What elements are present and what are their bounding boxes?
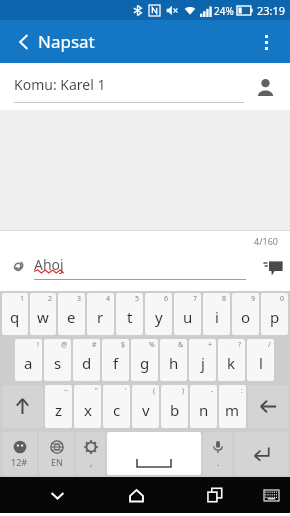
button[interactable]: Add contact (248, 70, 282, 104)
button[interactable]: $ (102, 339, 129, 381)
staticText: j (201, 353, 205, 373)
staticText: 0 (280, 294, 285, 304)
staticText: q (10, 307, 20, 327)
staticText: 6 (164, 294, 169, 304)
button[interactable]: 6 (145, 293, 172, 335)
button[interactable]: @ (44, 339, 71, 381)
staticText: , (90, 456, 93, 468)
staticText: Ahoj (34, 255, 64, 274)
staticText: EN (51, 456, 63, 468)
button[interactable]: Komu: Karel 1 (0, 63, 290, 110)
button[interactable]: 9 (232, 293, 259, 335)
button[interactable]: # (73, 339, 100, 381)
staticText: + (208, 340, 213, 350)
staticText: ? (238, 340, 242, 350)
staticText: Komu: Karel 1 (14, 75, 106, 94)
button[interactable]: ' (103, 385, 130, 428)
button[interactable]: " (74, 385, 101, 428)
staticText: v (142, 400, 150, 420)
staticText: a (24, 353, 33, 373)
staticText: f (113, 353, 119, 373)
button[interactable]: Switch keyboard (256, 480, 286, 510)
button[interactable]: ~ (45, 385, 72, 428)
button[interactable]: 2 (30, 293, 56, 335)
button[interactable]: 1 (2, 293, 28, 335)
staticText: i (215, 307, 219, 327)
staticText: ~ (64, 386, 69, 396)
button[interactable]: Language (39, 432, 74, 475)
staticText: t (127, 307, 133, 327)
button[interactable]: Home (114, 477, 158, 513)
button[interactable]: Hide keyboard (35, 477, 79, 513)
staticText: ) (182, 386, 185, 396)
staticText: 4 (106, 294, 111, 304)
button[interactable]: ? (218, 339, 245, 381)
staticText: Napsat (38, 30, 95, 53)
staticText: d (82, 353, 92, 373)
staticText: 9 (251, 294, 256, 304)
staticText: e (67, 307, 76, 327)
button[interactable]: 8 (203, 293, 230, 335)
staticText: . (217, 456, 220, 468)
button[interactable]: Back (8, 26, 40, 58)
staticText: u (183, 307, 193, 327)
staticText: w (37, 307, 49, 327)
button[interactable]: 5 (116, 293, 143, 335)
staticText: 3 (77, 294, 82, 304)
staticText: 5 (135, 294, 140, 304)
button[interactable]: 0 (261, 293, 288, 335)
staticText: y (155, 307, 163, 327)
staticText: $ (121, 340, 126, 350)
staticText: ! (37, 340, 39, 350)
staticText: k (227, 353, 236, 373)
staticText: c (113, 400, 121, 420)
staticText: 12# (11, 456, 28, 468)
button[interactable]: % (131, 339, 158, 381)
button[interactable]: 3 (58, 293, 85, 335)
staticText: 2 (48, 294, 53, 304)
button[interactable]: ! (15, 339, 42, 381)
button[interactable]: 4 (87, 293, 114, 335)
staticText: g (140, 353, 150, 373)
staticText: : (241, 386, 243, 396)
staticText: l (259, 353, 263, 373)
staticText: b (170, 400, 180, 420)
staticText: p (270, 307, 280, 327)
button[interactable]: Recent apps (193, 477, 237, 513)
staticText: / (268, 340, 271, 350)
button[interactable]: Settings (76, 432, 105, 475)
staticText: & (178, 340, 184, 350)
button[interactable]: - (190, 385, 217, 428)
button[interactable]: Shift (2, 385, 43, 428)
staticText: 23:19 (257, 3, 286, 18)
button[interactable]: 7 (174, 293, 201, 335)
staticText: - (211, 386, 214, 396)
button[interactable]: Backspace (248, 385, 288, 428)
staticText: 1 (20, 294, 25, 304)
staticText: ' (125, 386, 127, 396)
button[interactable]: Enter (234, 432, 288, 475)
staticText: 4/160 (254, 235, 278, 247)
button[interactable]: / (247, 339, 274, 381)
staticText: n (199, 400, 209, 420)
button[interactable]: Voice input (203, 432, 232, 475)
button[interactable]: ( (132, 385, 159, 428)
staticText: ( (153, 386, 156, 396)
staticText: m (225, 400, 240, 420)
staticText: # (92, 340, 97, 350)
button[interactable]: ) (161, 385, 188, 428)
button[interactable]: Symbols (2, 432, 37, 475)
button[interactable]: Attach (0, 250, 34, 284)
button[interactable]: : (219, 385, 246, 428)
staticText: 7 (193, 294, 198, 304)
button[interactable]: Send message (256, 250, 290, 284)
staticText: z (55, 400, 63, 420)
staticText: % (149, 340, 155, 350)
button[interactable]: More options (248, 24, 284, 60)
button[interactable]: + (189, 339, 216, 381)
button[interactable]: Space (107, 432, 201, 475)
staticText: " (95, 386, 98, 396)
staticText: @ (61, 340, 68, 350)
button[interactable]: & (160, 339, 187, 381)
staticText: h (169, 353, 179, 373)
